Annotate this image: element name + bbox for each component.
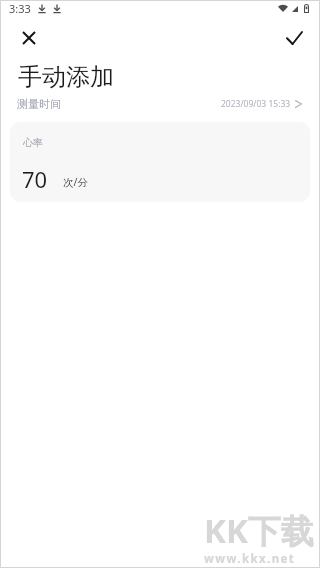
staticText: KK下载 (204, 508, 314, 553)
staticText: 手动添加 (18, 62, 114, 92)
button[interactable]: 心率 (10, 122, 310, 202)
staticText: 2023/09/03 15:33 (221, 98, 291, 110)
staticText: 心率 (23, 136, 43, 149)
staticText: 测量时间 (17, 97, 61, 111)
staticText: 次/分 (63, 175, 88, 189)
button[interactable]: Confirm (276, 19, 313, 56)
button[interactable]: Close (10, 19, 47, 56)
staticText: www.kkx.net (204, 551, 296, 567)
button[interactable]: 测量时间 (0, 93, 320, 115)
staticText: 70 (22, 164, 48, 194)
staticText: 3:33 (9, 1, 31, 16)
